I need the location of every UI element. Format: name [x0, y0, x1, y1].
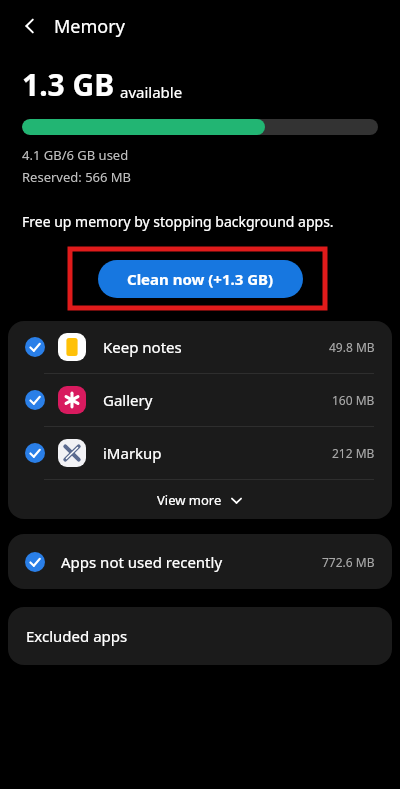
button[interactable]: Back	[12, 8, 48, 44]
staticText: Memory	[54, 14, 125, 39]
staticText: 772.6 MB	[322, 554, 375, 570]
staticText: Reserved: 566 MB	[22, 168, 132, 186]
staticText: Excluded apps	[26, 626, 128, 646]
button[interactable]: Keep notes	[8, 321, 392, 373]
staticText: available	[120, 82, 183, 102]
button[interactable]: Gallery	[8, 374, 392, 426]
staticText: 4.1 GB/6 GB used	[22, 146, 129, 164]
button[interactable]: Apps not used recently	[8, 534, 392, 589]
button[interactable]: View more	[8, 480, 392, 519]
staticText: View more	[157, 491, 222, 509]
staticText: iMarkup	[103, 443, 162, 463]
staticText: Keep notes	[103, 337, 182, 357]
staticText: Free up memory by stopping background ap…	[22, 212, 334, 231]
button[interactable]: Clean now (+1.3 GB)	[98, 260, 303, 298]
button[interactable]: iMarkup	[8, 427, 392, 479]
staticText: Apps not used recently	[61, 552, 223, 572]
staticText: 212 MB	[332, 445, 375, 461]
staticText: Clean now (+1.3 GB)	[127, 269, 274, 289]
staticText: Gallery	[103, 390, 153, 410]
staticText: 1.3 GB	[22, 64, 115, 105]
button[interactable]: Excluded apps	[8, 607, 392, 665]
staticText: 49.8 MB	[329, 339, 375, 355]
staticText: 160 MB	[332, 392, 375, 408]
